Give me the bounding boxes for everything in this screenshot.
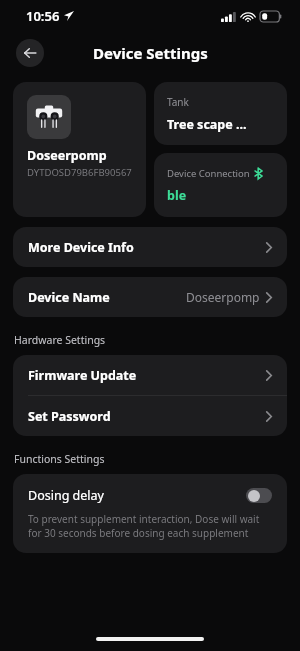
staticText: Tree scape ...	[167, 116, 247, 133]
staticText: Device Settings	[93, 43, 208, 63]
button[interactable]: Dosing delay	[28, 487, 272, 504]
button[interactable]: Device Connection	[154, 153, 287, 217]
staticText: Set Password	[28, 408, 111, 425]
staticText: Firmware Update	[28, 367, 137, 384]
staticText: Device Connection	[167, 167, 250, 180]
staticText: ble	[167, 187, 187, 204]
staticText: Dosing delay	[28, 487, 104, 504]
button[interactable]: Tank	[154, 82, 287, 145]
staticText: Doseerpomp	[186, 289, 260, 305]
staticText: Tank	[167, 95, 189, 109]
button[interactable]: Doseerpomp	[13, 82, 146, 217]
staticText: DYTDOSD79B6FB90567	[27, 166, 132, 179]
button[interactable]: Dosing delay toggle	[246, 488, 272, 503]
button[interactable]: Set Password	[13, 396, 287, 436]
staticText: 10:56	[26, 7, 60, 25]
staticText: Hardware Settings	[14, 333, 106, 347]
button[interactable]: Firmware Update	[13, 355, 287, 395]
button[interactable]: More Device Info	[13, 227, 287, 267]
staticText: To prevent supplement interaction, Dose …	[28, 512, 272, 540]
staticText: More Device Info	[28, 239, 134, 256]
staticText: Doseerpomp	[27, 147, 107, 164]
staticText: Functions Settings	[14, 452, 105, 466]
button[interactable]: Back	[16, 39, 44, 67]
button[interactable]: Device Name	[13, 277, 287, 317]
staticText: Device Name	[28, 289, 110, 306]
